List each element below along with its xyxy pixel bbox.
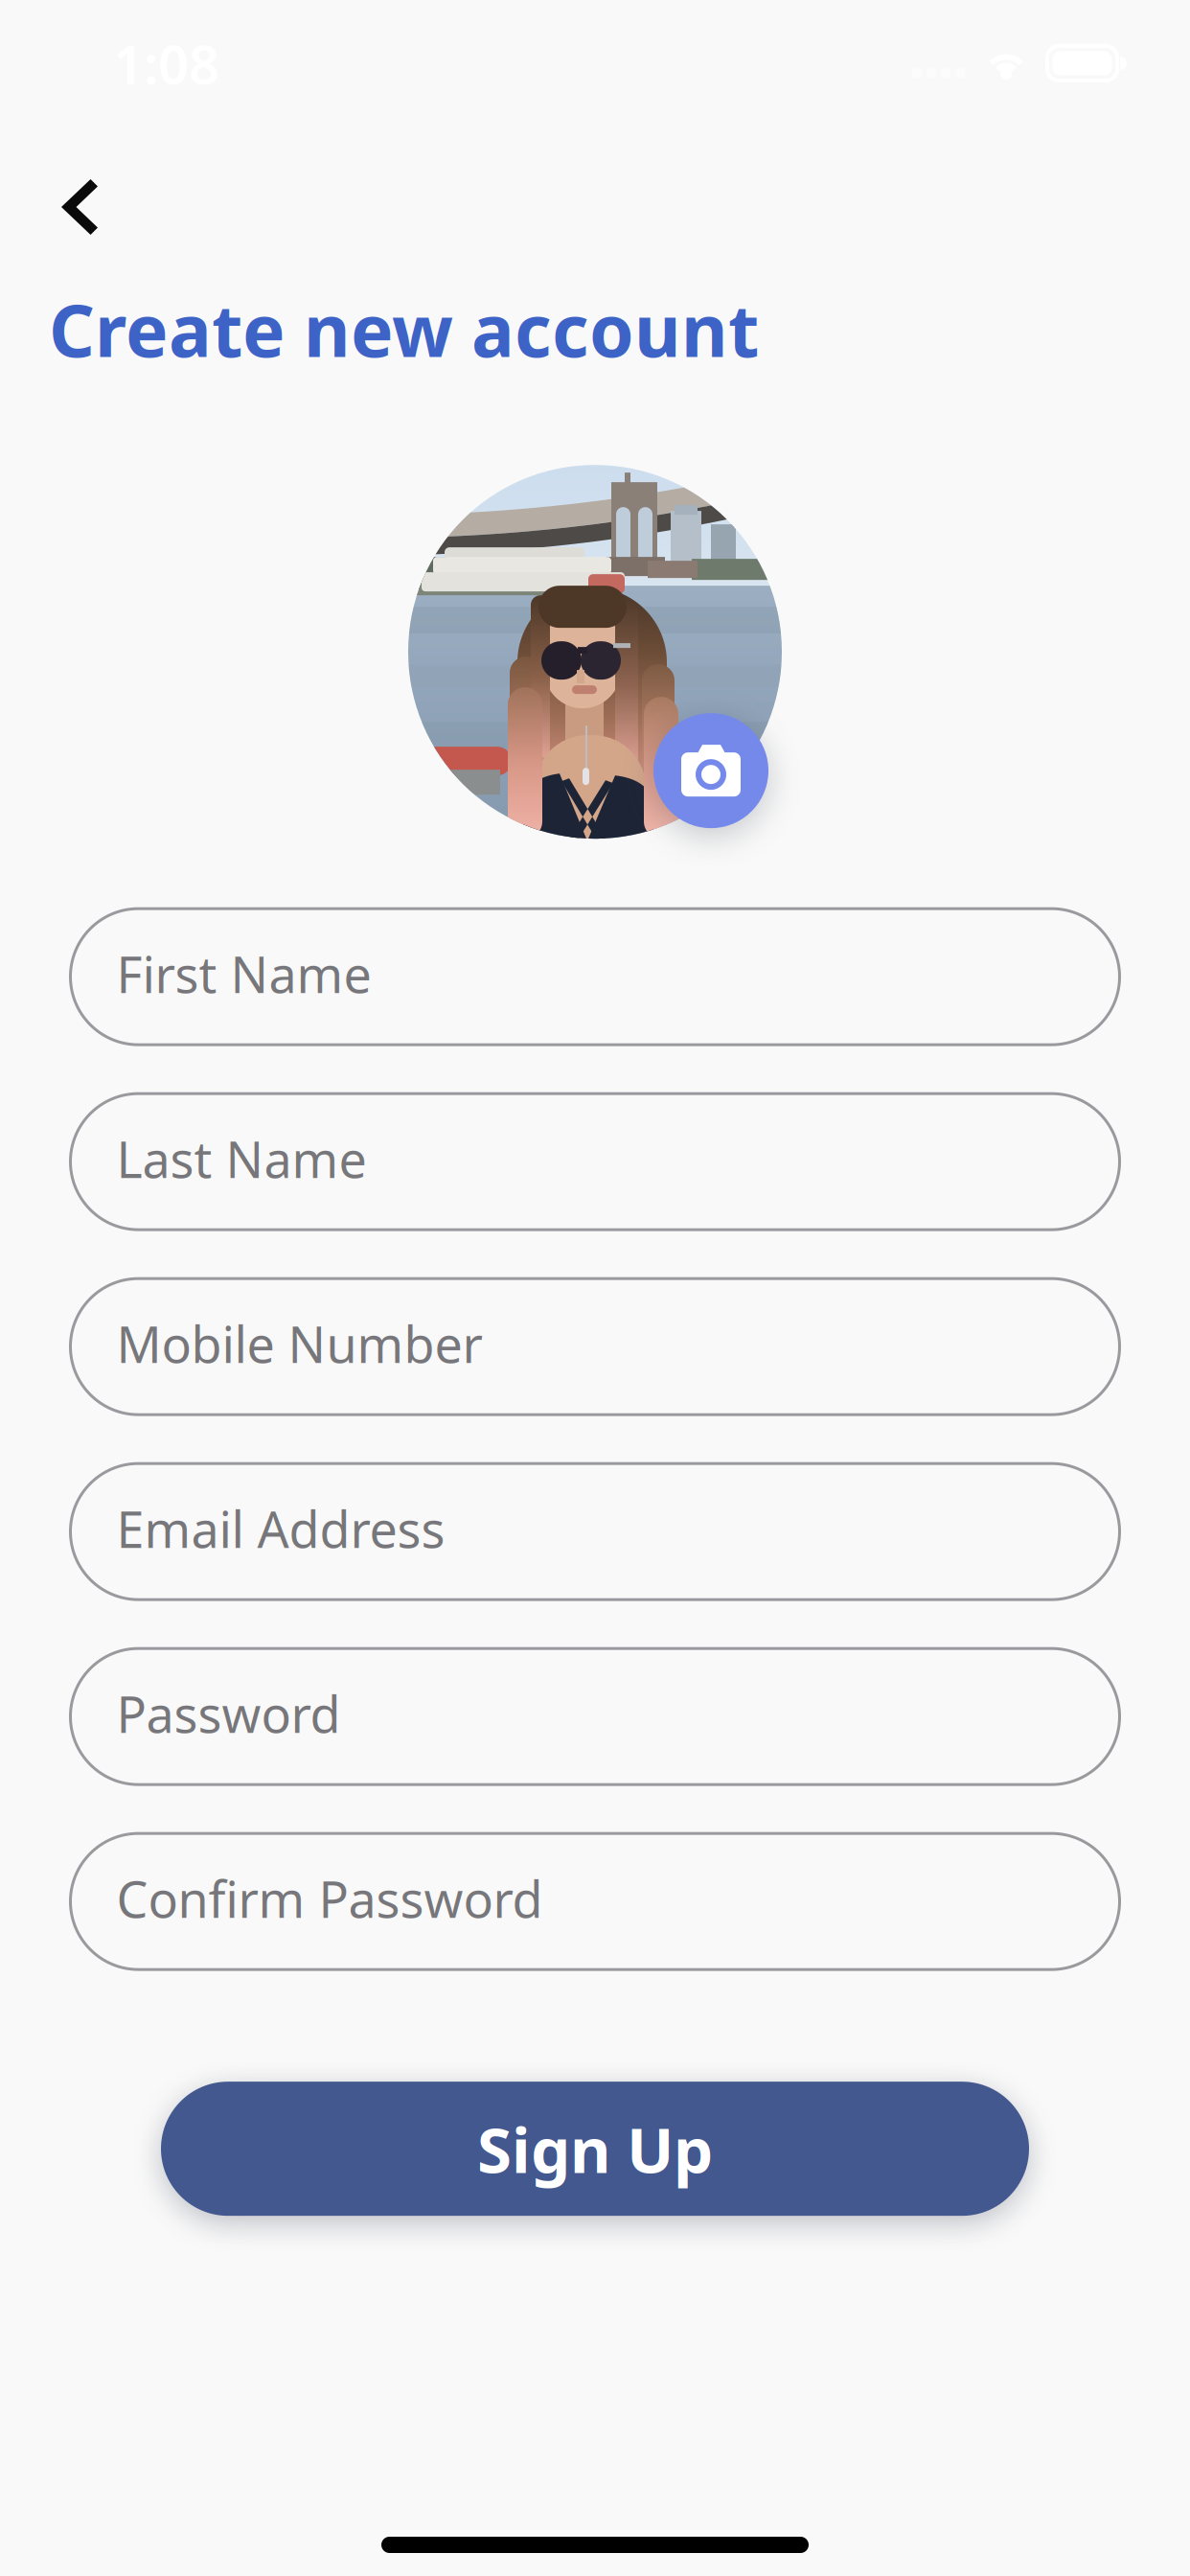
button[interactable]: Change profile photo	[408, 465, 782, 839]
button[interactable]: Email Address	[70, 1464, 1120, 1600]
staticText: Email Address	[116, 1496, 445, 1562]
button[interactable]: Last Name	[70, 1094, 1120, 1230]
button[interactable]: Password	[70, 1649, 1120, 1785]
staticText: Last Name	[116, 1126, 366, 1192]
button[interactable]: First Name	[70, 909, 1120, 1045]
button[interactable]: Back	[0, 152, 136, 262]
staticText: Confirm Password	[116, 1865, 543, 1932]
staticText: Password	[116, 1681, 341, 1747]
staticText: First Name	[116, 941, 371, 1007]
button[interactable]: Confirm Password	[70, 1833, 1120, 1970]
staticText: Mobile Number	[116, 1311, 482, 1377]
staticText: Sign Up	[477, 2107, 713, 2190]
button[interactable]: Sign Up	[161, 2082, 1029, 2216]
button[interactable]: Mobile Number	[70, 1279, 1120, 1415]
staticText: Create new account	[49, 282, 759, 377]
